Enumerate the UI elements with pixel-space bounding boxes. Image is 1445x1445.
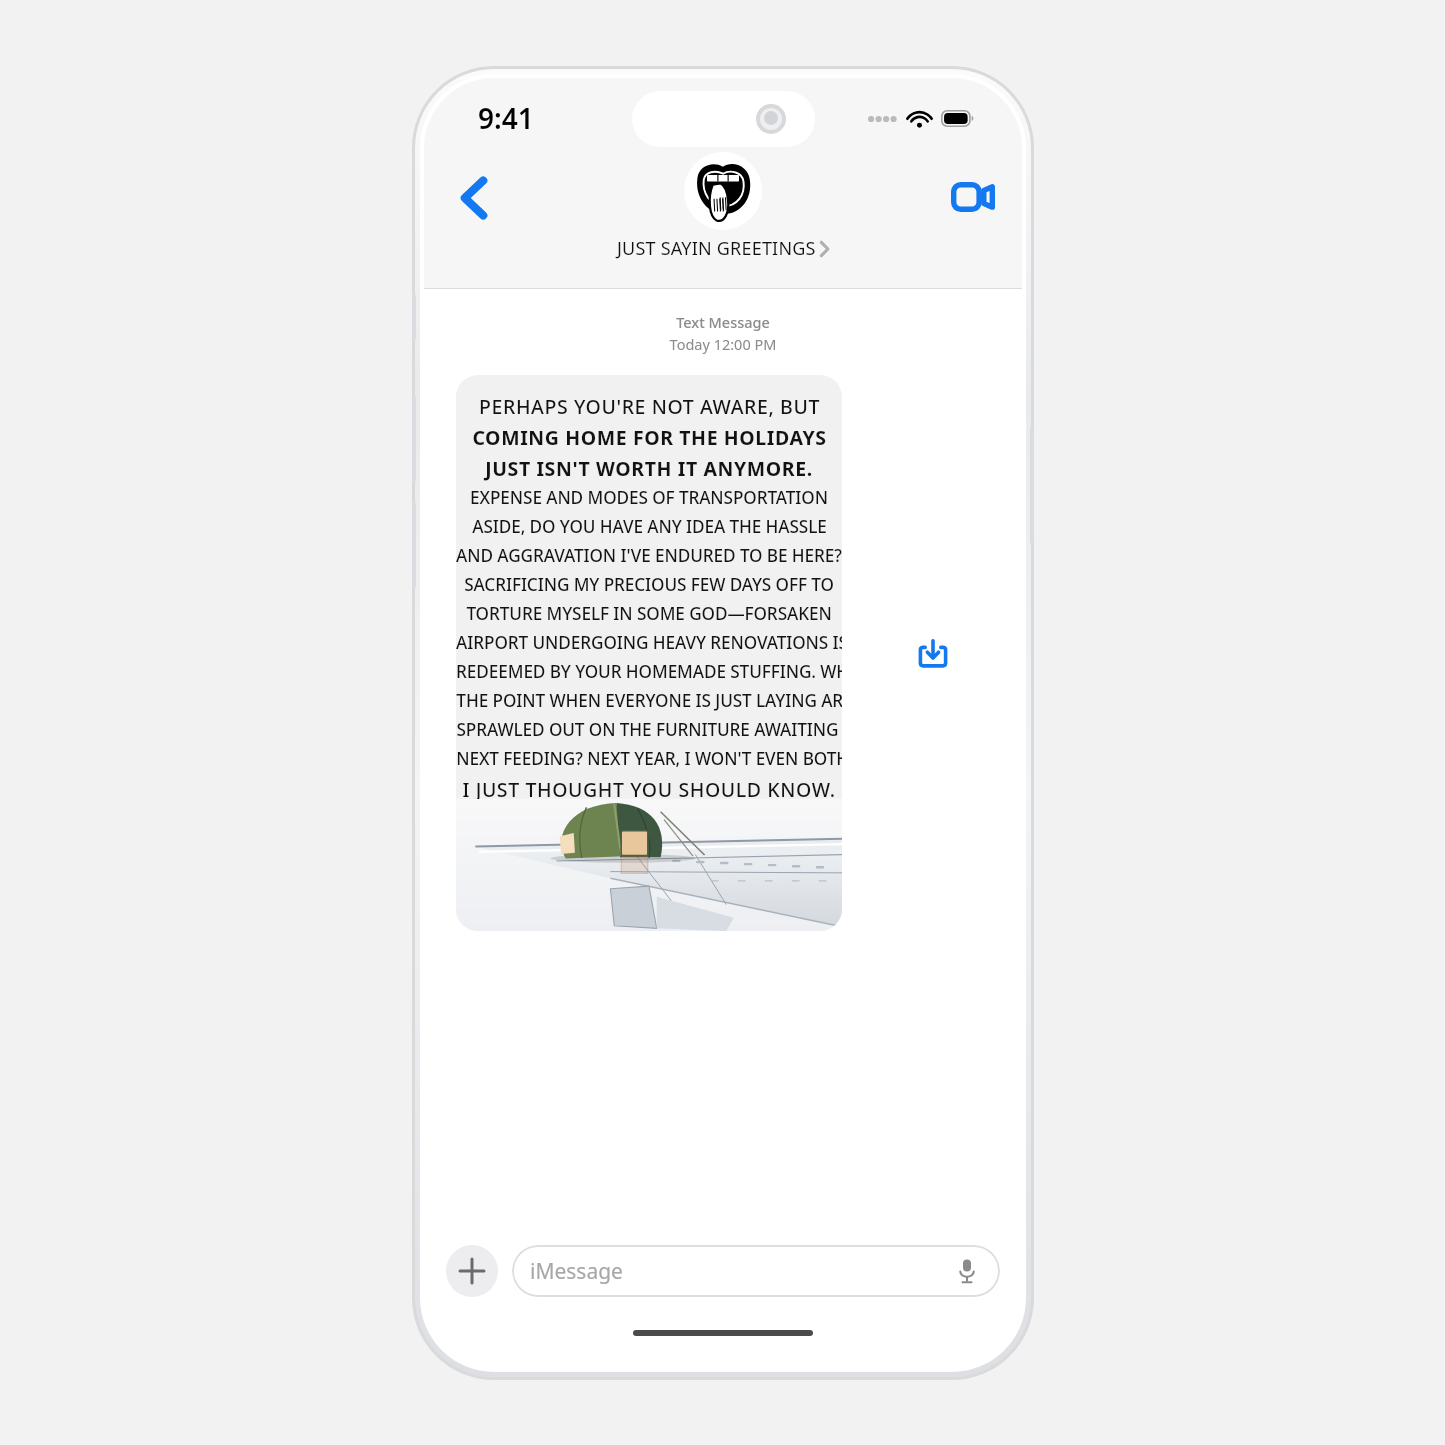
staticText: 9:41 (478, 99, 534, 137)
staticText: ASIDE, DO YOU HAVE ANY IDEA THE HASSLE (472, 515, 827, 538)
button[interactable]: Back (446, 170, 502, 226)
staticText: Text Message (424, 312, 1022, 332)
staticText: iMessage (530, 1257, 952, 1286)
button[interactable]: FaceTime video call (944, 168, 1002, 226)
staticText: Today 12:00 PM (424, 334, 1022, 354)
staticText: EXPENSE AND MODES OF TRANSPORTATION (470, 486, 828, 509)
staticText: COMING HOME FOR THE HOLIDAYS (472, 424, 827, 451)
button[interactable]: PERHAPS YOU'RE NOT AWARE, BUT (456, 375, 842, 931)
button[interactable]: Save image (910, 630, 956, 676)
button[interactable]: iMessage (512, 1245, 1000, 1297)
staticText: JUST SAYIN GREETINGS (617, 236, 816, 261)
staticText: I JUST THOUGHT YOU SHOULD KNOW. (462, 776, 836, 803)
button[interactable]: JUST SAYIN GREETINGS (617, 152, 829, 261)
button[interactable]: Dictate (952, 1256, 982, 1286)
staticText: AND AGGRAVATION I'VE ENDURED TO BE HERE? (456, 544, 842, 567)
staticText: SPRAWLED OUT ON THE FURNITURE AWAITING T… (456, 718, 842, 741)
staticText: SACRIFICING MY PRECIOUS FEW DAYS OFF TO (464, 573, 834, 596)
staticText: REDEEMED BY YOUR HOMEMADE STUFFING. WHAT… (456, 660, 842, 683)
staticText: TORTURE MYSELF IN SOME GOD—FORSAKEN (466, 602, 832, 625)
staticText: NEXT FEEDING? NEXT YEAR, I WON'T EVEN BO… (456, 747, 842, 770)
staticText: PERHAPS YOU'RE NOT AWARE, BUT (479, 393, 820, 420)
staticText: AIRPORT UNDERGOING HEAVY RENOVATIONS IS … (456, 631, 842, 654)
staticText: THE POINT WHEN EVERYONE IS JUST LAYING A… (456, 689, 842, 712)
button[interactable]: Add attachment (446, 1245, 498, 1297)
staticText: JUST ISN'T WORTH IT ANYMORE. (485, 455, 813, 482)
